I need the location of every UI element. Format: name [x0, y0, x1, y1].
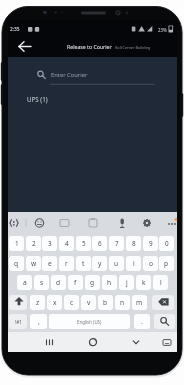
staticText: , — [38, 317, 40, 327]
button[interactable]: e — [42, 256, 57, 271]
staticText: h — [107, 278, 112, 287]
staticText: 8 — [132, 239, 136, 248]
button[interactable]: 5 — [76, 236, 91, 251]
button[interactable] — [38, 333, 60, 351]
staticText: g — [90, 278, 95, 287]
button[interactable]: k — [136, 275, 151, 290]
staticText: Release to Courier — [67, 43, 112, 50]
staticText: d — [56, 278, 61, 287]
staticText: n — [120, 298, 125, 307]
staticText: 2:35 — [10, 26, 20, 33]
staticText: 9 — [149, 239, 153, 248]
button[interactable] — [14, 38, 36, 55]
staticText: j — [126, 278, 128, 287]
staticText: y — [98, 259, 102, 268]
staticText: UPS (1) — [27, 95, 48, 103]
staticText: . — [141, 317, 143, 327]
button[interactable]: 2 — [26, 236, 41, 251]
staticText: b — [103, 298, 108, 307]
staticText: o — [149, 259, 153, 268]
staticText: 4 — [65, 239, 69, 248]
button[interactable]: c — [64, 295, 79, 310]
button[interactable]: UPS (1) — [27, 93, 67, 104]
button[interactable]: j — [119, 275, 134, 290]
staticText: c — [70, 298, 74, 307]
button[interactable]: 6 — [92, 236, 107, 251]
staticText: 0 — [165, 239, 169, 248]
staticText: i — [133, 259, 135, 268]
staticText: 3 — [48, 239, 52, 248]
button[interactable] — [139, 214, 155, 232]
staticText: s — [40, 278, 44, 287]
staticText: 1 — [15, 239, 19, 248]
staticText: f — [74, 278, 77, 287]
button[interactable]: 4 — [59, 236, 74, 251]
staticText: x — [53, 298, 57, 307]
staticText: k — [142, 278, 146, 287]
button[interactable]: w — [26, 256, 41, 271]
button[interactable] — [125, 333, 147, 351]
button[interactable] — [152, 295, 174, 310]
staticText: t — [82, 259, 85, 268]
button[interactable] — [32, 214, 48, 232]
button[interactable]: r — [59, 256, 74, 271]
button[interactable] — [154, 314, 175, 329]
button[interactable]: n — [115, 295, 130, 310]
staticText: English (US) — [77, 319, 102, 325]
staticText: l — [160, 278, 162, 287]
button[interactable]: a — [17, 275, 32, 290]
button[interactable]: q — [9, 256, 24, 271]
button[interactable]: 0 — [159, 236, 174, 251]
button[interactable]: i — [126, 256, 141, 271]
staticText: w — [31, 259, 37, 268]
button[interactable]: 7 — [109, 236, 124, 251]
button[interactable]: m — [132, 295, 147, 310]
button[interactable] — [9, 295, 27, 310]
button[interactable]: p — [159, 256, 174, 271]
staticText: u — [114, 259, 119, 268]
staticText: z — [36, 298, 40, 307]
button[interactable]: l — [153, 275, 168, 290]
staticText: !#1 — [15, 319, 22, 325]
button[interactable]: h — [102, 275, 117, 290]
button[interactable]: u — [109, 256, 124, 271]
button[interactable]: g — [85, 275, 100, 290]
button[interactable]: y — [92, 256, 107, 271]
button[interactable] — [49, 314, 130, 329]
button[interactable] — [164, 214, 180, 232]
button[interactable]: o — [143, 256, 158, 271]
button[interactable]: Enter Courier — [51, 69, 111, 81]
button[interactable] — [57, 214, 73, 232]
button[interactable]: f — [68, 275, 83, 290]
button[interactable]: . — [134, 314, 150, 329]
button[interactable] — [6, 214, 22, 232]
button[interactable] — [85, 214, 101, 232]
staticText: 2 — [32, 239, 36, 248]
button[interactable]: d — [51, 275, 66, 290]
staticText: 23% — [158, 27, 167, 33]
button[interactable]: s — [34, 275, 49, 290]
staticText: q — [14, 259, 19, 268]
staticText: Enter Courier — [51, 71, 88, 79]
button[interactable] — [158, 333, 176, 351]
button[interactable]: 9 — [143, 236, 158, 251]
staticText: 6 — [98, 239, 102, 248]
staticText: e — [48, 259, 52, 268]
staticText: v — [87, 298, 91, 307]
button[interactable]: b — [98, 295, 113, 310]
button[interactable]: 1 — [9, 236, 24, 251]
button[interactable] — [114, 214, 130, 232]
staticText: m — [136, 298, 143, 307]
staticText: Koll Center Building — [115, 45, 151, 50]
button[interactable]: 8 — [126, 236, 141, 251]
button[interactable]: z — [30, 295, 45, 310]
button[interactable]: x — [47, 295, 62, 310]
button[interactable] — [82, 333, 104, 351]
button[interactable]: v — [81, 295, 96, 310]
button[interactable]: !#1 — [9, 314, 27, 329]
staticText: 5 — [82, 239, 86, 248]
button[interactable]: t — [76, 256, 91, 271]
button[interactable]: 3 — [42, 236, 57, 251]
button[interactable]: , — [30, 314, 47, 329]
staticText: 7 — [115, 239, 119, 248]
